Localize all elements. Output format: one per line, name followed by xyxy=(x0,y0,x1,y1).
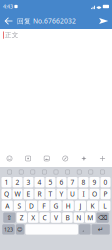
button[interactable]: ↵ xyxy=(92,224,110,235)
staticText: Y xyxy=(59,190,63,198)
button[interactable]: 3 xyxy=(23,177,33,187)
button[interactable]: 4 xyxy=(34,177,44,187)
button[interactable]: G xyxy=(50,201,62,211)
staticText: E xyxy=(26,190,30,198)
staticText: X xyxy=(31,213,35,222)
button[interactable]: D xyxy=(26,201,37,211)
button[interactable]: Attach xyxy=(0,150,19,167)
staticText: 123 xyxy=(4,226,13,233)
button[interactable] xyxy=(25,224,78,235)
staticText: O xyxy=(92,190,97,198)
staticText: A xyxy=(5,201,9,210)
staticText: U xyxy=(70,190,75,198)
button[interactable]: 7 xyxy=(67,177,77,187)
button[interactable]: A xyxy=(2,201,13,211)
staticText: M xyxy=(87,213,93,222)
button[interactable]: B xyxy=(62,212,73,223)
staticText: P xyxy=(103,190,107,198)
staticText: ↵ xyxy=(98,226,104,233)
staticText: 。 xyxy=(82,226,87,233)
button[interactable]: 0 xyxy=(100,177,110,187)
staticText: ⌫ xyxy=(98,214,107,221)
staticText: B xyxy=(65,213,69,222)
staticText: 8 xyxy=(81,178,85,187)
staticText: K xyxy=(91,201,95,210)
button[interactable]: O xyxy=(89,189,99,199)
staticText: T xyxy=(48,190,52,198)
staticText: L xyxy=(103,201,106,210)
button[interactable]: 1 xyxy=(1,177,11,187)
button[interactable]: Attach xyxy=(37,150,56,167)
staticText: 5 xyxy=(48,178,52,187)
staticText: J xyxy=(79,201,81,210)
staticText: 2 xyxy=(15,178,19,187)
staticText: Q xyxy=(4,190,9,198)
staticText: F xyxy=(42,201,45,210)
button[interactable]: J xyxy=(75,201,86,211)
button[interactable]: 123 xyxy=(2,224,15,235)
button[interactable]: L xyxy=(99,201,110,211)
button[interactable]: E xyxy=(23,189,33,199)
staticText: S xyxy=(17,201,21,210)
staticText: G xyxy=(53,201,58,210)
button[interactable]: M xyxy=(85,212,95,223)
staticText: 6 xyxy=(59,178,63,187)
button[interactable]: S xyxy=(14,201,25,211)
button[interactable]: V xyxy=(51,212,61,223)
staticText: 0 xyxy=(103,178,107,187)
button[interactable]: Attach xyxy=(75,150,93,167)
button[interactable]: 8 xyxy=(78,177,88,187)
staticText: ☺ xyxy=(17,226,23,232)
button[interactable]: 5 xyxy=(45,177,55,187)
button[interactable]: Attach xyxy=(56,150,75,167)
staticText: 4:43 xyxy=(3,3,13,10)
staticText: H xyxy=(66,201,71,210)
button[interactable]: Q xyxy=(1,189,11,199)
button[interactable]: Send xyxy=(95,13,112,29)
button[interactable]: ⇧ xyxy=(3,212,16,223)
staticText: 正文 xyxy=(5,31,19,39)
staticText: Z xyxy=(20,213,24,222)
button[interactable]: 9 xyxy=(89,177,99,187)
button[interactable]: Attach xyxy=(19,150,37,167)
staticText: ⇧ xyxy=(6,214,12,221)
staticText: 1 xyxy=(4,178,8,187)
button[interactable]: 。 xyxy=(79,224,91,235)
button[interactable]: Y xyxy=(56,189,66,199)
staticText: C xyxy=(43,213,47,222)
button[interactable]: Back xyxy=(0,13,17,29)
button[interactable]: C xyxy=(39,212,50,223)
staticText: I xyxy=(82,190,84,198)
button[interactable]: W xyxy=(12,189,22,199)
button[interactable]: R xyxy=(34,189,44,199)
button[interactable]: I xyxy=(78,189,88,199)
staticText: D xyxy=(29,201,34,210)
button[interactable]: F xyxy=(38,201,49,211)
staticText: 4 xyxy=(37,178,41,187)
button[interactable]: N xyxy=(74,212,84,223)
button[interactable]: X xyxy=(28,212,38,223)
staticText: 回复 No.67662032 xyxy=(17,17,76,25)
staticText: R xyxy=(37,190,41,198)
staticText: 3 xyxy=(26,178,30,187)
button[interactable]: Attach xyxy=(93,150,112,167)
button[interactable]: 6 xyxy=(56,177,66,187)
staticText: W xyxy=(14,190,20,198)
button[interactable]: K xyxy=(87,201,98,211)
button[interactable]: ☺ xyxy=(16,224,24,235)
staticText: 7 xyxy=(70,178,74,187)
staticText: V xyxy=(54,213,58,222)
button[interactable]: H xyxy=(63,201,74,211)
button[interactable]: P xyxy=(100,189,110,199)
button[interactable]: T xyxy=(45,189,55,199)
button[interactable]: 2 xyxy=(12,177,22,187)
staticText: 9 xyxy=(92,178,96,187)
staticText: N xyxy=(76,213,81,222)
button[interactable]: U xyxy=(67,189,77,199)
button[interactable]: ⌫ xyxy=(96,212,109,223)
button[interactable]: Z xyxy=(17,212,27,223)
